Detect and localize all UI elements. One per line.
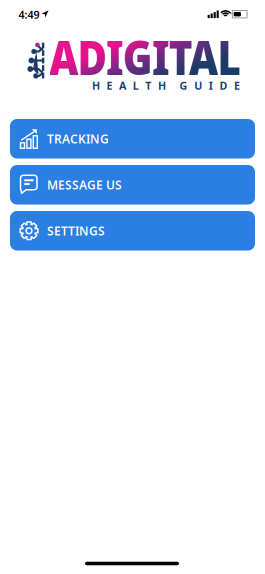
staticText: E bbox=[234, 78, 240, 93]
staticText: G bbox=[180, 78, 188, 93]
staticText: MESSAGE US bbox=[47, 177, 122, 193]
staticText: SETTINGS bbox=[47, 223, 105, 239]
staticText: 4:49 bbox=[18, 7, 39, 22]
staticText: TRACKING bbox=[47, 131, 109, 147]
staticText: I bbox=[209, 78, 213, 93]
staticText: U bbox=[194, 78, 202, 93]
staticText: H bbox=[92, 78, 100, 93]
staticText: H bbox=[158, 78, 166, 93]
staticText: E bbox=[106, 78, 112, 93]
staticText: A bbox=[119, 78, 126, 93]
button[interactable]: Tracking bbox=[10, 119, 255, 158]
button[interactable]: Settings bbox=[10, 211, 255, 250]
staticText: L bbox=[133, 78, 139, 93]
button[interactable]: Message us bbox=[10, 165, 255, 204]
staticText: D bbox=[219, 78, 227, 93]
staticText: T bbox=[145, 78, 151, 93]
